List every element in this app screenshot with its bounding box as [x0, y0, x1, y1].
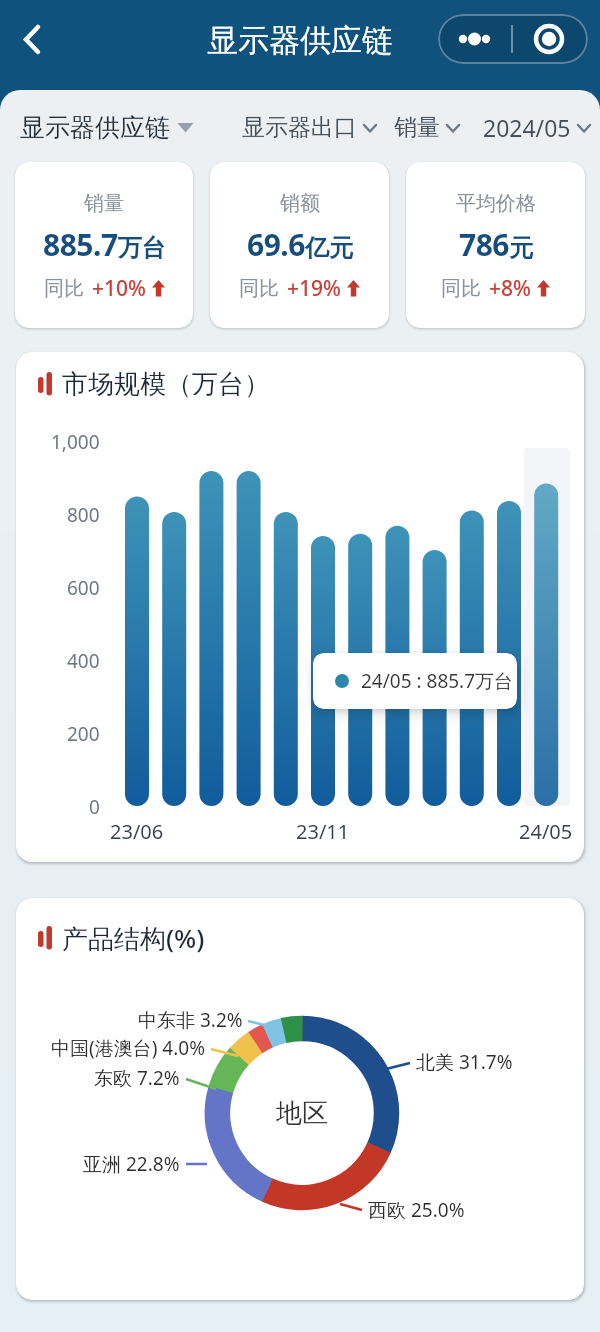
staticText: 23/11 — [296, 818, 350, 845]
staticText: 24/05 — [519, 818, 573, 845]
staticText: 0 — [89, 794, 100, 820]
button[interactable] — [10, 20, 54, 60]
staticText: 同比 — [441, 276, 481, 301]
staticText: 北美 31.7% — [416, 1049, 513, 1075]
button[interactable] — [438, 14, 588, 64]
button[interactable]: 销量 — [15, 162, 193, 328]
staticText: 同比 — [44, 276, 84, 301]
staticText: 600 — [67, 575, 100, 601]
button[interactable]: 平均价格 — [406, 162, 585, 328]
staticText: 显示器供应链 — [20, 112, 170, 143]
staticText: 中国(港澳台) 4.0% — [51, 1035, 205, 1061]
staticText: 2024/05 — [483, 112, 571, 143]
button[interactable]: 销量 — [394, 104, 460, 150]
staticText: 市场规模（万台） — [62, 368, 270, 401]
staticText: +19% — [287, 274, 341, 303]
staticText: 地区 — [276, 1097, 328, 1130]
staticText: 1,000 — [51, 429, 100, 455]
staticText: 中东非 3.2% — [138, 1007, 243, 1033]
staticText: 24/05 : 885.7万台 — [361, 668, 514, 694]
button[interactable]: 2024/05 — [483, 104, 591, 150]
staticText: 显示器供应链 — [207, 21, 393, 60]
staticText: 东欧 7.2% — [94, 1065, 180, 1091]
staticText: 销量 — [394, 113, 440, 142]
staticText: +8% — [489, 274, 531, 303]
staticText: 400 — [67, 648, 100, 674]
staticText: 显示器出口 — [242, 113, 357, 142]
staticText: 69.6亿元 — [247, 224, 353, 265]
staticText: 同比 — [239, 276, 279, 301]
staticText: 200 — [67, 721, 100, 747]
staticText: 800 — [67, 502, 100, 528]
button[interactable]: 销额 — [210, 162, 389, 328]
staticText: 产品结构(%) — [62, 920, 205, 956]
staticText: 亚洲 22.8% — [83, 1151, 180, 1177]
staticText: 786元 — [459, 224, 533, 265]
staticText: 平均价格 — [456, 191, 536, 216]
button[interactable]: 显示器供应链 — [20, 104, 194, 150]
staticText: 西欧 25.0% — [368, 1197, 465, 1223]
staticText: 销量 — [84, 191, 124, 216]
staticText: 885.7万台 — [43, 224, 166, 265]
staticText: 23/06 — [110, 818, 164, 845]
button[interactable]: 显示器出口 — [242, 104, 377, 150]
staticText: +10% — [92, 274, 146, 303]
staticText: 销额 — [280, 191, 320, 216]
